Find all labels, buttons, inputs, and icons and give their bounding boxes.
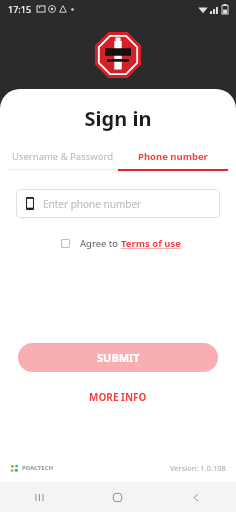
button[interactable]: Enter phone number	[16, 189, 220, 218]
staticText: Agree to	[80, 237, 121, 250]
staticText: 17:15	[8, 3, 32, 15]
staticText: Terms of use	[121, 237, 181, 250]
button[interactable]: MORE INFO	[81, 388, 155, 406]
button[interactable]: Username & Password	[8, 150, 118, 163]
staticText: Phone number	[138, 150, 208, 163]
staticText: SUBMIT	[97, 350, 140, 365]
staticText: Version: 1.0.108	[170, 463, 226, 473]
button[interactable]: Back	[157, 482, 236, 512]
button[interactable]: Recent apps	[0, 482, 78, 512]
staticText: MORE INFO	[89, 390, 147, 404]
staticText: PDACTECH	[22, 464, 54, 472]
button[interactable]: Terms of use	[121, 237, 181, 250]
button[interactable]: SUBMIT	[18, 343, 218, 372]
button[interactable]: Phone number	[118, 150, 228, 163]
staticText: Sign in	[0, 105, 236, 132]
staticText: Enter phone number	[43, 197, 142, 211]
staticText: Username & Password	[12, 150, 114, 163]
button[interactable]: Agree checkbox	[56, 234, 74, 252]
button[interactable]: Home	[78, 482, 157, 512]
